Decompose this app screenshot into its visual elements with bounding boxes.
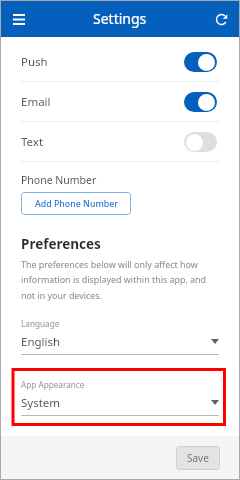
button[interactable]: Push [0, 42, 240, 82]
button[interactable]: Add Phone Number [21, 192, 131, 215]
staticText: Settings [93, 9, 147, 28]
staticText: System [21, 395, 61, 411]
staticText: Email [21, 94, 51, 110]
staticText: App Appearance [21, 379, 85, 390]
staticText: Save [187, 451, 209, 465]
staticText: Push [21, 54, 48, 70]
staticText: Phone Number [21, 173, 97, 187]
button[interactable]: Refresh [208, 6, 234, 32]
button[interactable]: Language [21, 318, 219, 358]
button[interactable]: Menu [6, 6, 32, 32]
staticText: The preferences below will only affect h… [21, 258, 211, 302]
staticText: Text [21, 134, 44, 150]
staticText: Preferences [21, 235, 101, 253]
button[interactable]: App Appearance [21, 379, 219, 419]
button[interactable]: Email [0, 82, 240, 122]
button[interactable]: Text [0, 122, 240, 162]
staticText: Add Phone Number [35, 198, 118, 210]
staticText: Language [21, 318, 60, 329]
button[interactable]: Save [176, 446, 220, 470]
staticText: English [21, 334, 61, 350]
